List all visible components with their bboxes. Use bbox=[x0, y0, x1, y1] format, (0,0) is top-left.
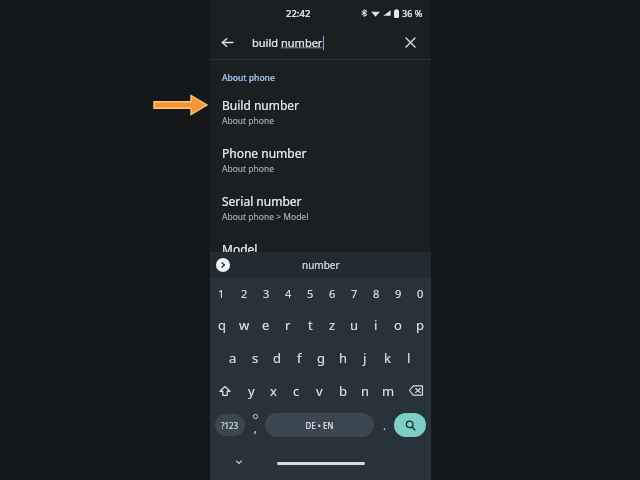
button[interactable]: k bbox=[376, 341, 398, 374]
button[interactable]: q bbox=[210, 308, 233, 341]
button[interactable]: Build number bbox=[210, 88, 431, 136]
button[interactable]: 2 bbox=[233, 278, 255, 308]
button[interactable]: 5 bbox=[299, 278, 321, 308]
button[interactable]: g bbox=[310, 341, 332, 374]
staticText: 1 bbox=[218, 286, 225, 301]
staticText: j bbox=[363, 349, 367, 367]
staticText: o bbox=[394, 316, 402, 334]
staticText: z bbox=[329, 316, 336, 334]
button[interactable]: DE • EN bbox=[265, 413, 374, 437]
staticText: k bbox=[384, 349, 391, 367]
staticText: c bbox=[293, 382, 300, 400]
staticText: 9 bbox=[395, 286, 402, 301]
staticText: 4 bbox=[285, 286, 292, 301]
staticText: About phone bbox=[222, 163, 275, 175]
button[interactable]: y bbox=[240, 374, 262, 407]
button[interactable]: s bbox=[244, 341, 266, 374]
button[interactable]: 1 bbox=[210, 278, 233, 308]
staticText: f bbox=[297, 349, 302, 367]
button[interactable]: n bbox=[354, 374, 377, 407]
staticText: 8 bbox=[373, 286, 380, 301]
staticText: 7 bbox=[351, 286, 358, 301]
staticText: v bbox=[316, 382, 323, 400]
staticText: a bbox=[229, 349, 237, 367]
button[interactable]: Model bbox=[210, 232, 431, 266]
button[interactable]: Search bbox=[394, 413, 426, 437]
staticText: e bbox=[262, 316, 270, 334]
staticText: y bbox=[248, 382, 255, 400]
button[interactable]: v bbox=[308, 374, 331, 407]
button[interactable]: 3 bbox=[255, 278, 277, 308]
button[interactable]: t bbox=[299, 308, 321, 341]
button[interactable]: Serial number bbox=[210, 184, 431, 232]
staticText: 0 bbox=[417, 286, 424, 301]
button[interactable]: Back bbox=[210, 26, 244, 59]
staticText: Serial number bbox=[222, 193, 302, 209]
staticText: w bbox=[239, 316, 250, 334]
button[interactable]: i bbox=[365, 308, 387, 341]
button[interactable]: 8 bbox=[365, 278, 387, 308]
button[interactable]: . bbox=[374, 407, 394, 443]
staticText: ?123 bbox=[221, 420, 239, 431]
staticText: build bbox=[252, 35, 281, 50]
button[interactable]: Emoji and comma bbox=[245, 407, 265, 443]
staticText: d bbox=[273, 349, 281, 367]
staticText: i bbox=[374, 316, 378, 334]
button[interactable]: f bbox=[288, 341, 310, 374]
button[interactable]: Phone number bbox=[210, 136, 431, 184]
button[interactable]: b bbox=[331, 374, 354, 407]
staticText: g bbox=[317, 349, 325, 367]
staticText: Phone number bbox=[222, 145, 307, 161]
button[interactable]: 7 bbox=[343, 278, 365, 308]
button[interactable]: Hide keyboard bbox=[232, 455, 246, 469]
button[interactable]: d bbox=[266, 341, 288, 374]
button[interactable]: w bbox=[233, 308, 255, 341]
staticText: number bbox=[281, 35, 323, 50]
staticText: l bbox=[407, 349, 411, 367]
staticText: b bbox=[339, 382, 347, 400]
staticText: t bbox=[308, 316, 313, 334]
button[interactable]: p bbox=[409, 308, 431, 341]
staticText: 5 bbox=[307, 286, 314, 301]
button[interactable]: Clear search bbox=[393, 26, 427, 59]
button[interactable]: z bbox=[321, 308, 343, 341]
button[interactable]: Shift bbox=[210, 374, 240, 407]
staticText: 22:42 bbox=[286, 7, 311, 20]
button[interactable]: h bbox=[332, 341, 354, 374]
button[interactable]: 9 bbox=[387, 278, 409, 308]
button[interactable]: number bbox=[302, 258, 340, 272]
staticText: n bbox=[361, 382, 370, 400]
staticText: About phone bbox=[222, 115, 275, 127]
staticText: 3 bbox=[263, 286, 270, 301]
button[interactable]: o bbox=[387, 308, 409, 341]
button[interactable]: e bbox=[255, 308, 277, 341]
button[interactable]: Backspace bbox=[400, 374, 431, 407]
button[interactable]: 0 bbox=[409, 278, 431, 308]
button[interactable]: x bbox=[262, 374, 285, 407]
staticText: p bbox=[416, 316, 424, 334]
staticText: r bbox=[285, 316, 291, 334]
button[interactable]: c bbox=[285, 374, 308, 407]
staticText: DE • EN bbox=[305, 420, 334, 431]
staticText: s bbox=[252, 349, 259, 367]
button[interactable]: r bbox=[277, 308, 299, 341]
staticText: 6 bbox=[329, 286, 336, 301]
button[interactable]: 4 bbox=[277, 278, 299, 308]
staticText: q bbox=[218, 316, 226, 334]
staticText: 2 bbox=[241, 286, 248, 301]
staticText: About phone bbox=[222, 72, 275, 84]
button[interactable]: u bbox=[343, 308, 365, 341]
button[interactable]: j bbox=[354, 341, 376, 374]
button[interactable]: l bbox=[398, 341, 420, 374]
button[interactable]: a bbox=[221, 341, 244, 374]
staticText: h bbox=[339, 349, 348, 367]
staticText: m bbox=[382, 382, 395, 400]
button[interactable]: m bbox=[377, 374, 400, 407]
staticText: Build number bbox=[222, 97, 300, 113]
button[interactable]: 6 bbox=[321, 278, 343, 308]
staticText: About phone > Model bbox=[222, 211, 309, 223]
staticText: . bbox=[383, 418, 386, 433]
button[interactable]: More suggestions bbox=[216, 258, 230, 272]
button[interactable]: ?123 bbox=[215, 414, 245, 436]
staticText: x bbox=[270, 382, 277, 400]
